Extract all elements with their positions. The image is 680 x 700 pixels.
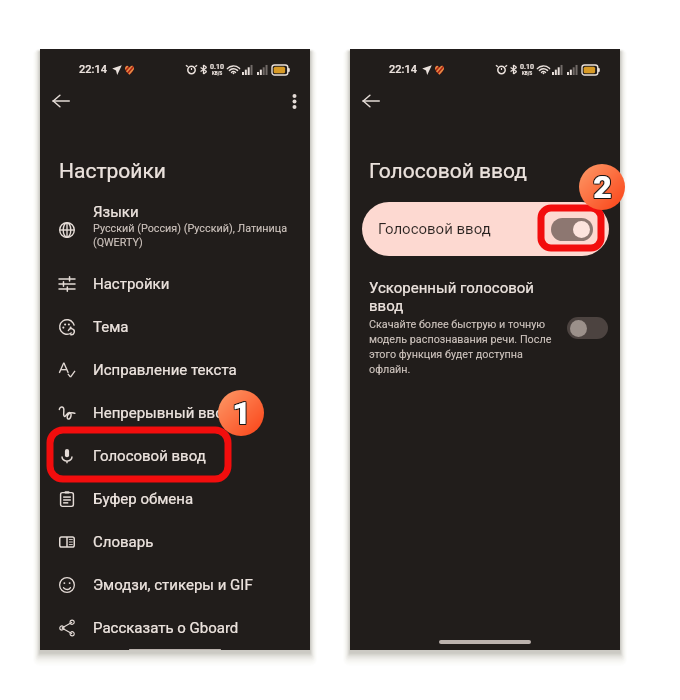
staticText: KB/S <box>522 71 533 76</box>
staticText: KB/S <box>212 71 223 76</box>
staticText: Эмодзи, стикеры и GIF <box>93 576 253 594</box>
button[interactable]: Эмодзи, стикеры и GIF <box>40 563 310 606</box>
button[interactable]: Голосовой ввод <box>40 434 310 477</box>
staticText: 1 <box>233 394 252 432</box>
button[interactable]: Языки <box>40 197 310 262</box>
staticText: Настройки <box>59 159 166 184</box>
button[interactable]: Ускоренный голосовой ввод <box>350 279 620 375</box>
staticText: 22:14 <box>79 63 107 76</box>
button[interactable]: Faster voice typing off <box>567 317 608 339</box>
staticText: Тема <box>93 318 129 336</box>
staticText: 22:14 <box>389 63 417 76</box>
staticText: 1 <box>233 393 252 431</box>
staticText: 2 <box>592 168 611 206</box>
staticText: 1 <box>232 394 251 432</box>
staticText: 2 <box>592 167 611 205</box>
button[interactable]: Голосовой ввод <box>362 202 609 256</box>
button[interactable]: Тема <box>40 305 310 348</box>
staticText: Рассказать о Gboard <box>93 619 239 637</box>
staticText: 1 <box>233 395 252 433</box>
staticText: Голосовой ввод <box>93 447 206 465</box>
staticText: 2 <box>594 168 613 206</box>
staticText: Русский (Россия) (Русский), Латиница (QW… <box>93 222 300 248</box>
button[interactable]: Back <box>45 85 77 117</box>
staticText: Языки <box>93 203 139 221</box>
staticText: Словарь <box>93 533 154 551</box>
staticText: 2 <box>594 169 613 207</box>
staticText: Скачайте более быструю и точную модель р… <box>369 318 555 375</box>
staticText: Буфер обмена <box>93 490 194 508</box>
button[interactable]: Исправление текста <box>40 348 310 391</box>
staticText: 1 <box>231 394 250 432</box>
staticText: 2 <box>594 167 613 205</box>
button[interactable]: More options <box>278 85 310 117</box>
button[interactable]: Настройки <box>40 262 310 305</box>
staticText: 0.10 <box>210 63 224 71</box>
staticText: Исправление текста <box>93 361 237 379</box>
staticText: Голосовой ввод <box>378 220 491 238</box>
staticText: 1 <box>231 395 250 433</box>
staticText: Ускоренный голосовой ввод <box>369 279 555 315</box>
staticText: 1 <box>231 393 250 431</box>
button[interactable]: Непрерывный ввод <box>40 391 310 434</box>
button[interactable]: Back <box>355 85 387 117</box>
staticText: Непрерывный ввод <box>93 404 233 422</box>
staticText: Голосовой ввод <box>369 159 527 184</box>
staticText: 2 <box>593 169 612 207</box>
staticText: Настройки <box>93 275 170 293</box>
staticText: 1 <box>232 395 251 433</box>
staticText: 2 <box>593 167 612 205</box>
staticText: 2 <box>593 168 612 206</box>
staticText: 2 <box>592 169 611 207</box>
button[interactable]: Буфер обмена <box>40 477 310 520</box>
staticText: 0.10 <box>520 63 534 71</box>
button[interactable]: Voice typing on <box>551 218 593 241</box>
button[interactable]: Словарь <box>40 520 310 563</box>
staticText: 1 <box>232 393 251 431</box>
button[interactable]: Рассказать о Gboard <box>40 606 310 649</box>
